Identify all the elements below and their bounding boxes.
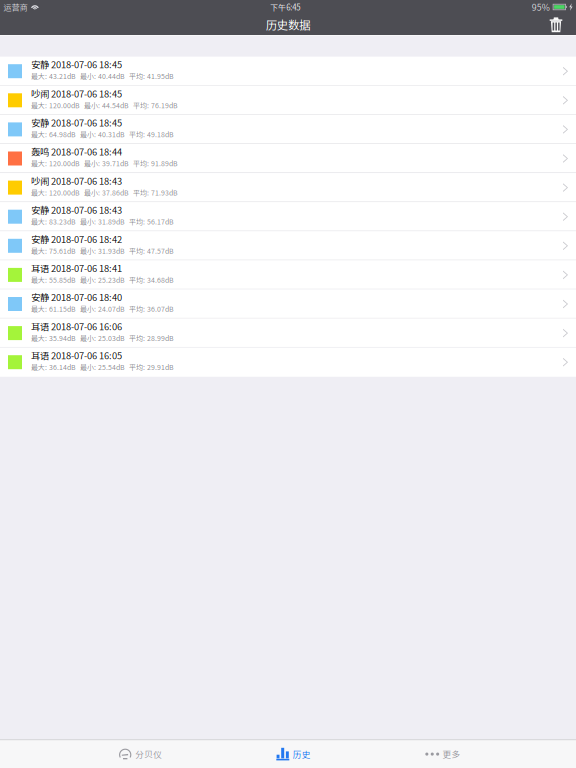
staticText: 运营商 xyxy=(4,1,28,13)
button[interactable]: 耳语 2018-07-06 16:06 xyxy=(0,318,576,348)
staticText: 最大: 120.00dB 最小: 44.54dB 平均: 76.19dB xyxy=(31,100,178,110)
button[interactable]: 安静 2018-07-06 18:45 xyxy=(0,115,576,144)
staticText: 最大: 35.94dB 最小: 25.03dB 平均: 28.99dB xyxy=(31,333,174,343)
button[interactable]: 轰鸣 2018-07-06 18:44 xyxy=(0,144,576,173)
button[interactable]: 删除 xyxy=(539,14,573,35)
staticText: 最大: 83.23dB 最小: 31.89dB 平均: 56.17dB xyxy=(31,216,174,226)
staticText: 耳语 2018-07-06 18:41 xyxy=(31,261,122,275)
staticText: 最大: 75.61dB 最小: 31.93dB 平均: 47.57dB xyxy=(31,246,174,256)
button[interactable]: 吵闹 2018-07-06 18:43 xyxy=(0,173,576,202)
staticText: 最大: 61.15dB 最小: 24.07dB 平均: 36.07dB xyxy=(31,304,174,314)
button[interactable]: 吵闹 2018-07-06 18:45 xyxy=(0,86,576,115)
staticText: 安静 2018-07-06 18:40 xyxy=(31,290,122,304)
staticText: 最大: 36.14dB 最小: 25.54dB 平均: 29.91dB xyxy=(31,362,174,372)
staticText: 95% xyxy=(532,1,550,13)
button[interactable]: 历史 xyxy=(192,740,384,768)
button[interactable]: 更多 xyxy=(384,740,576,768)
staticText: 最大: 120.00dB 最小: 39.71dB 平均: 91.89dB xyxy=(31,158,178,168)
staticText: 最大: 55.85dB 最小: 25.23dB 平均: 34.68dB xyxy=(31,275,174,285)
button[interactable]: 安静 2018-07-06 18:45 xyxy=(0,57,576,86)
staticText: 吵闹 2018-07-06 18:45 xyxy=(31,87,122,100)
button[interactable]: 安静 2018-07-06 18:40 xyxy=(0,289,576,318)
staticText: 安静 2018-07-06 18:45 xyxy=(31,57,122,71)
staticText: 更多 xyxy=(443,748,461,760)
staticText: 最大: 64.98dB 最小: 40.31dB 平均: 49.18dB xyxy=(31,129,174,139)
staticText: 最大: 43.21dB 最小: 40.44dB 平均: 41.95dB xyxy=(31,71,174,81)
staticText: 轰鸣 2018-07-06 18:44 xyxy=(31,145,122,158)
button[interactable]: 安静 2018-07-06 18:42 xyxy=(0,231,576,260)
staticText: 安静 2018-07-06 18:45 xyxy=(31,116,122,129)
button[interactable]: 耳语 2018-07-06 18:41 xyxy=(0,260,576,289)
staticText: 分贝仪 xyxy=(135,748,162,760)
button[interactable]: 分贝仪 xyxy=(0,740,192,768)
button[interactable]: 安静 2018-07-06 18:43 xyxy=(0,202,576,231)
staticText: 最大: 120.00dB 最小: 37.86dB 平均: 71.93dB xyxy=(31,187,178,197)
staticText: 历史 xyxy=(293,748,311,760)
staticText: 吵闹 2018-07-06 18:43 xyxy=(31,174,122,187)
staticText: 安静 2018-07-06 18:43 xyxy=(31,203,122,216)
staticText: 下午6:45 xyxy=(270,1,300,13)
staticText: 历史数据 xyxy=(266,16,310,33)
button[interactable]: 耳语 2018-07-06 16:05 xyxy=(0,348,576,377)
staticText: 安静 2018-07-06 18:42 xyxy=(31,232,122,246)
staticText: 耳语 2018-07-06 16:05 xyxy=(31,348,122,362)
staticText: 耳语 2018-07-06 16:06 xyxy=(31,319,122,333)
